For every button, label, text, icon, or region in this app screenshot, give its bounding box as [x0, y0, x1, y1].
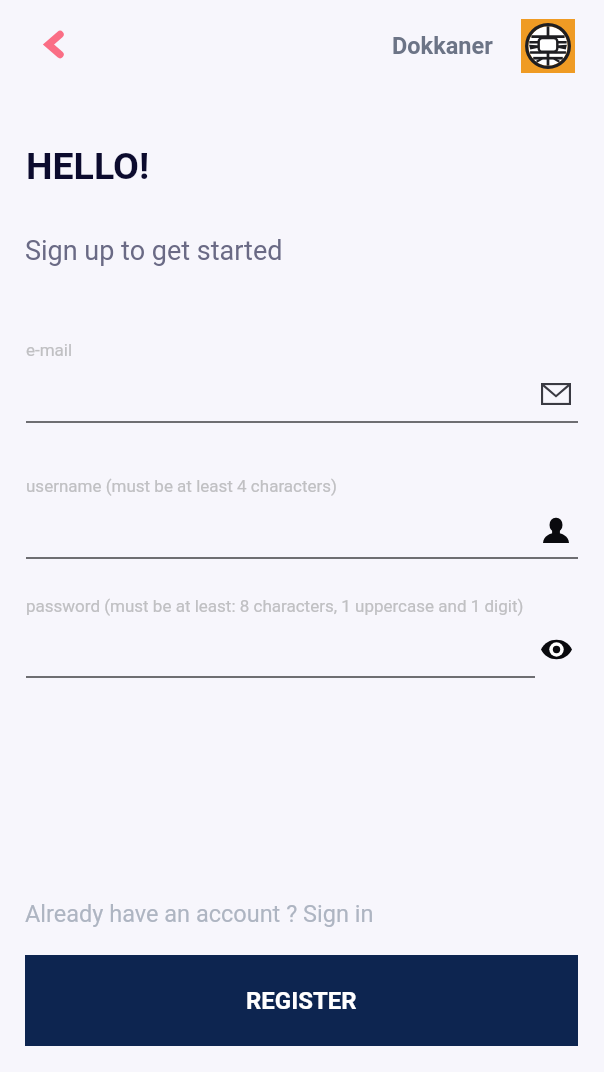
button[interactable]: Show password — [536, 629, 576, 669]
button[interactable]: Dokkaner — [392, 32, 493, 60]
button[interactable]: E-mail — [536, 374, 576, 414]
button[interactable]: Dokkaner logo — [521, 19, 575, 73]
staticText: REGISTER — [246, 987, 357, 1015]
staticText: Sign up to get started — [25, 235, 283, 267]
staticText: username (must be at least 4 characters) — [26, 476, 337, 496]
staticText: e-mail — [26, 340, 73, 360]
button[interactable]: Username — [536, 510, 576, 550]
staticText: password (must be at least: 8 characters… — [26, 596, 524, 616]
staticText: HELLO! — [26, 144, 150, 188]
button[interactable]: REGISTER — [25, 955, 578, 1046]
button[interactable]: Already have an account ? Sign in — [25, 900, 374, 928]
button[interactable]: Back — [25, 19, 79, 73]
staticText: Dokkaner — [392, 32, 493, 60]
staticText: Already have an account ? Sign in — [25, 900, 374, 928]
